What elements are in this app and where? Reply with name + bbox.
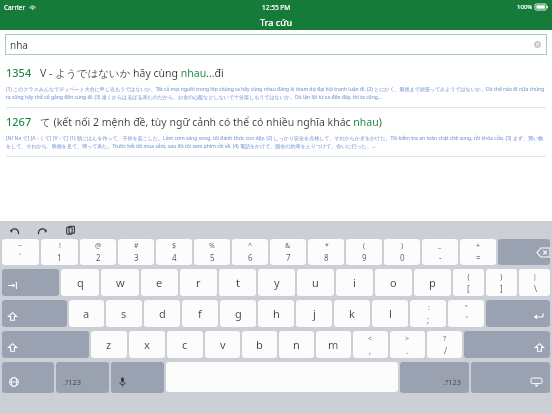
button[interactable]: u [297,269,334,296]
button[interactable]: $ [156,239,192,265]
staticText: g [235,306,242,321]
button[interactable]: * [308,239,344,265]
staticText: V - ようではないか hãy cùng nhau...đi [40,66,224,80]
button[interactable]: f [182,300,218,327]
button[interactable]: m [316,331,351,358]
button[interactable]: | [519,269,550,296]
staticText: [N/ Na で] [A - くて] [V - て] (1) 朝ごはんを作って、… [6,135,546,150]
button[interactable]: + [460,239,496,265]
staticText: Tra cứu [260,16,293,28]
staticText: d [159,306,166,321]
button[interactable]: b [242,331,277,358]
staticText: ? [443,334,447,344]
button[interactable]: ^ [232,239,268,265]
button[interactable]: ~ [2,239,39,265]
button[interactable]: v [205,331,240,358]
staticText: k [349,306,355,321]
button[interactable]: Shift [2,331,89,358]
button[interactable]: o [375,269,412,296]
staticText: ) [401,241,404,251]
button[interactable]: k [334,300,370,327]
button[interactable]: @ [80,239,116,265]
button[interactable]: q [61,269,99,296]
button[interactable]: ! [41,239,78,265]
button[interactable]: : [410,300,446,327]
button[interactable]: t [219,269,256,296]
button[interactable]: Next keyboard [2,362,54,393]
staticText: n [293,337,300,352]
button[interactable]: " [448,300,484,327]
button[interactable]: } [486,269,517,296]
button[interactable]: Backspace [498,239,550,265]
staticText: : [428,303,430,313]
button[interactable]: ( [346,239,382,265]
staticText: u [312,275,319,290]
staticText: & [285,241,291,251]
staticText: .?123 [63,377,82,387]
staticText: + [476,241,481,251]
button[interactable]: r [180,269,217,296]
button[interactable]: { [453,269,484,296]
button[interactable]: & [270,239,306,265]
staticText: o [390,275,397,290]
button[interactable]: Return [486,300,550,327]
button[interactable]: l [372,300,408,327]
button[interactable]: x [129,331,165,358]
staticText: ~ [18,241,23,251]
staticText: 7 [286,252,291,263]
button[interactable]: d [144,300,180,327]
staticText: 12:55 PM [262,3,291,12]
button[interactable]: g [220,300,256,327]
staticText: q [77,275,84,290]
button[interactable]: a [69,300,104,327]
button[interactable]: ) [384,239,420,265]
staticText: x [144,337,150,352]
button[interactable]: y [258,269,295,296]
button[interactable]: j [296,300,332,327]
button[interactable]: % [194,239,230,265]
button[interactable]: ? [427,331,462,358]
button[interactable]: Shift [464,331,550,358]
button[interactable]: Tab [2,269,59,296]
staticText: @ [95,241,102,251]
staticText: ] [500,283,503,294]
staticText: _ [438,241,442,251]
button[interactable]: Undo [7,223,21,237]
button[interactable]: h [258,300,294,327]
button[interactable]: .?123 [56,362,109,393]
button[interactable]: z [91,331,127,358]
staticText: | [533,272,537,282]
button[interactable]: _ [422,239,458,265]
button[interactable]: p [414,269,451,296]
button[interactable]: Caps lock [2,300,67,327]
button[interactable]: .?123 [400,362,469,393]
button[interactable]: e [141,269,178,296]
staticText: i [353,275,356,290]
staticText: % [209,241,215,251]
button[interactable]: i [336,269,373,296]
button[interactable]: Hide keyboard [471,362,550,393]
button[interactable]: > [390,331,425,358]
button[interactable]: s [106,300,142,327]
staticText: , [369,345,372,356]
button[interactable]: Dictation [111,362,164,393]
staticText: 3 [134,252,139,263]
staticText: 1267 [6,114,32,129]
button[interactable]: n [279,331,314,358]
button[interactable]: Clear text [533,40,542,49]
button[interactable]: Paste [63,223,77,237]
button[interactable]: nha [5,34,547,55]
button[interactable]: w [101,269,139,296]
button[interactable]: # [118,239,154,265]
staticText: 1 [57,252,62,263]
staticText: 100% [517,3,533,11]
button[interactable]: 1354 [0,59,552,108]
button[interactable]: Redo [35,223,49,237]
button[interactable]: c [167,331,203,358]
button[interactable]: 1267 [0,108,552,157]
staticText: t [236,275,240,290]
staticText: c [182,337,188,352]
button[interactable]: < [353,331,388,358]
staticText: { [467,272,470,282]
